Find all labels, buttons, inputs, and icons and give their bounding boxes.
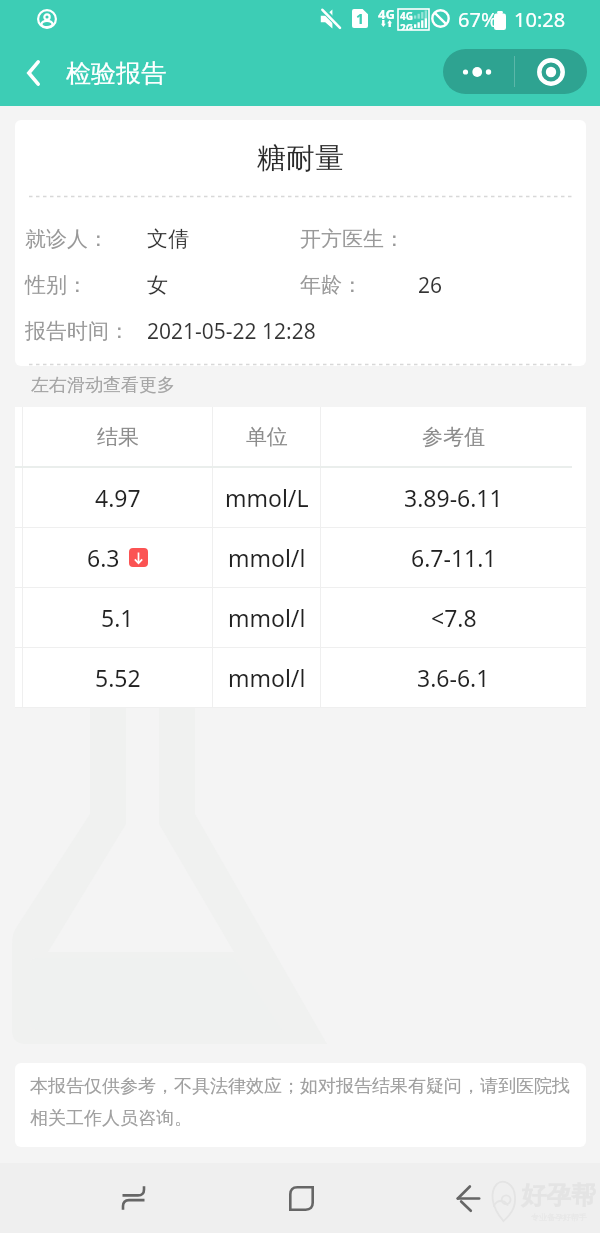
- staticText: mmol/l: [228, 542, 306, 573]
- staticText: 26: [418, 271, 443, 300]
- staticText: 年龄：: [300, 272, 363, 298]
- staticText: 10:28: [514, 6, 566, 33]
- staticText: 67%: [458, 6, 498, 33]
- staticText: <7.8: [431, 602, 477, 633]
- staticText: 1: [356, 9, 365, 28]
- staticText: 6.3: [87, 542, 120, 573]
- button[interactable]: Recent apps: [94, 1163, 172, 1233]
- staticText: 性别：: [25, 272, 88, 298]
- staticText: 4G: [400, 9, 413, 23]
- staticText: 好孕帮: [521, 1180, 596, 1211]
- staticText: mmol/l: [228, 602, 306, 633]
- button[interactable]: Back: [429, 1163, 507, 1233]
- button[interactable]: Back: [0, 42, 64, 104]
- button[interactable]: Home: [262, 1163, 340, 1233]
- staticText: 左右滑动查看更多: [31, 374, 175, 397]
- staticText: 4G: [378, 5, 395, 23]
- staticText: mmol/l: [228, 662, 306, 693]
- staticText: 5.52: [95, 662, 141, 693]
- staticText: 结果: [97, 424, 139, 450]
- staticText: 单位: [246, 424, 288, 450]
- staticText: 开方医生：: [300, 226, 405, 252]
- staticText: 参考值: [422, 424, 485, 450]
- staticText: 糖耐量: [257, 140, 344, 177]
- staticText: 4.97: [95, 482, 141, 513]
- staticText: 本报告仅供参考，不具法律效应；如对报告结果有疑问，请到医院找相关工作人员咨询。: [30, 1075, 572, 1129]
- button[interactable]: More options: [443, 49, 514, 94]
- staticText: 就诊人：: [25, 226, 109, 252]
- staticText: 6.7-11.1: [411, 542, 497, 573]
- staticText: mmol/L: [225, 482, 309, 513]
- staticText: 报告时间：: [25, 318, 130, 344]
- staticText: 3.89-6.11: [404, 482, 503, 513]
- staticText: 检验报告: [66, 58, 166, 89]
- staticText: 2021-05-22 12:28: [147, 317, 316, 346]
- staticText: 5.1: [101, 602, 134, 633]
- button[interactable]: Close mini program: [515, 49, 587, 94]
- staticText: 2G: [400, 21, 413, 30]
- staticText: 文倩: [147, 226, 189, 252]
- staticText: 女: [147, 272, 168, 298]
- staticText: 3.6-6.1: [417, 662, 490, 693]
